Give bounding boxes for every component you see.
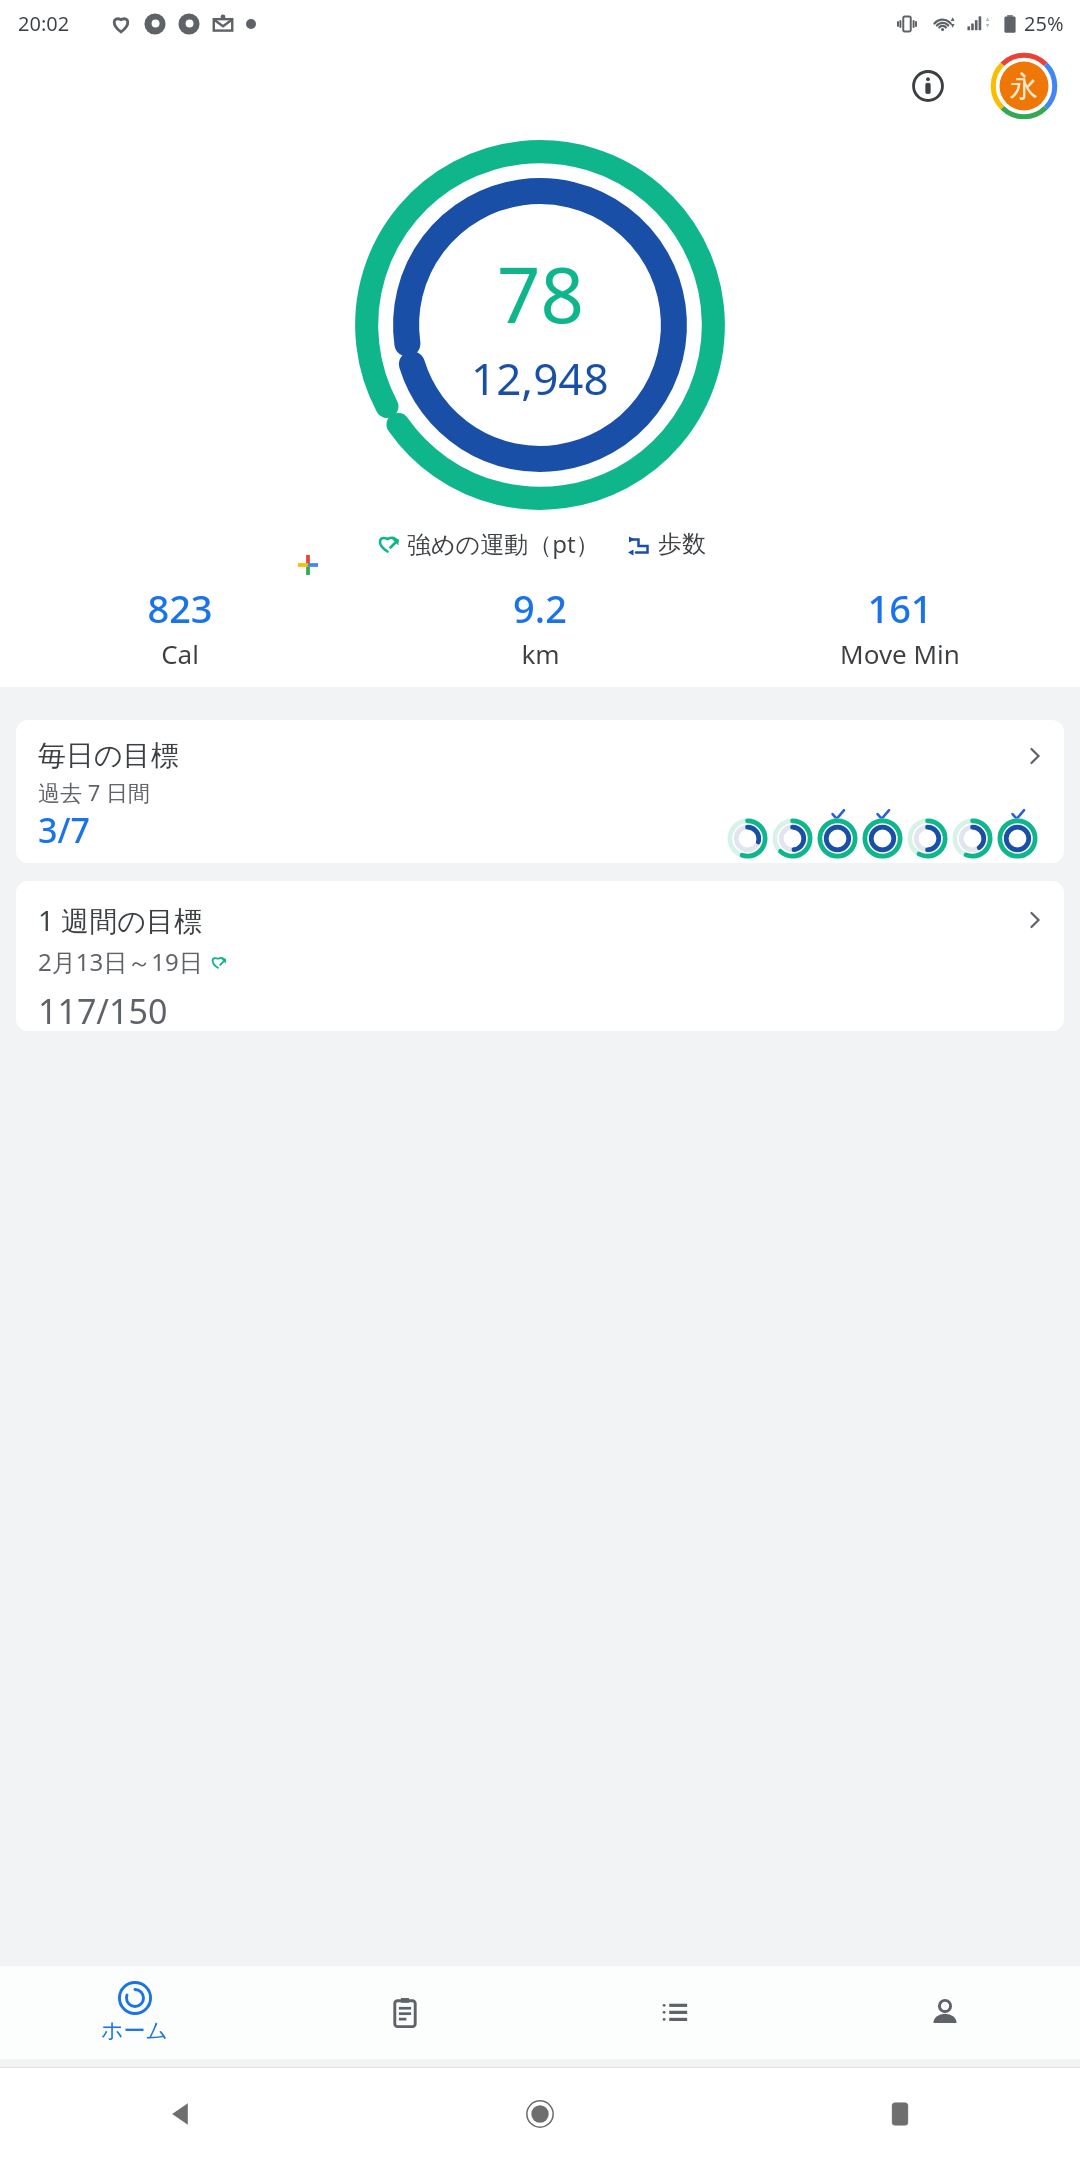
staticText: 78 <box>497 242 584 346</box>
button[interactable]: Add activity <box>284 541 331 588</box>
button[interactable]: 1 週間の目標 <box>16 881 1064 1031</box>
staticText: Cal <box>161 636 199 671</box>
button[interactable]: 823 <box>0 582 360 671</box>
staticText: 毎日の目標 <box>38 738 179 773</box>
button[interactable]: Back <box>150 2084 210 2144</box>
staticText: 3/7 <box>38 807 90 853</box>
staticText: Move Min <box>840 636 960 671</box>
staticText: 20:02 <box>18 10 70 37</box>
staticText: ホーム <box>101 2017 169 2045</box>
staticText: 過去 7 日間 <box>38 777 151 807</box>
staticText: 25% <box>1024 10 1064 37</box>
staticText: 161 <box>867 582 933 634</box>
button[interactable]: Browse <box>540 1966 810 2059</box>
button[interactable]: 161 <box>720 582 1080 671</box>
button[interactable]: Home <box>510 2084 570 2144</box>
button[interactable]: Information <box>904 62 952 110</box>
staticText: 1 週間の目標 <box>38 901 202 939</box>
button[interactable]: Recents <box>870 2084 930 2144</box>
staticText: 12,948 <box>471 348 609 408</box>
staticText: 永 <box>1010 69 1038 104</box>
button[interactable]: ホーム <box>0 1966 270 2059</box>
staticText: 117/150 <box>38 988 168 1031</box>
staticText: 823 <box>147 582 213 634</box>
button[interactable]: Journal <box>270 1966 540 2059</box>
staticText: 歩数 <box>658 529 706 559</box>
button[interactable]: Account <box>990 52 1058 120</box>
button[interactable]: 9.2 <box>360 582 720 671</box>
button[interactable]: 毎日の目標 <box>16 720 1064 863</box>
staticText: 2月13日～19日 <box>38 945 203 978</box>
staticText: km <box>521 636 560 671</box>
button[interactable]: 歩数 <box>626 529 706 559</box>
button[interactable]: 強めの運動（pt） <box>375 527 600 560</box>
staticText: 強めの運動（pt） <box>407 527 600 560</box>
button[interactable]: Profile <box>810 1966 1080 2059</box>
staticText: 9.2 <box>513 582 567 634</box>
